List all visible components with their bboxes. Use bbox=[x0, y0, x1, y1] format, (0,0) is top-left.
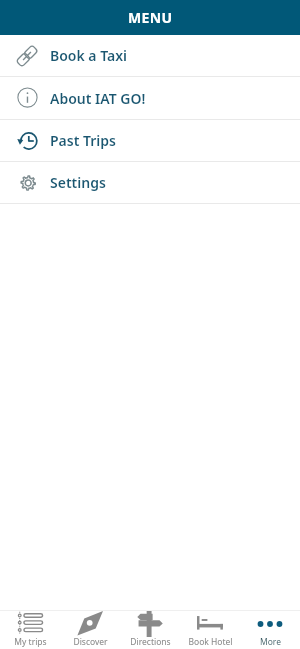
staticText: Past Trips bbox=[50, 131, 116, 150]
button[interactable]: Directions bbox=[120, 611, 180, 649]
staticText: Discover bbox=[73, 636, 108, 648]
staticText: More bbox=[260, 636, 281, 648]
button[interactable]: About IAT GO! bbox=[0, 77, 300, 120]
staticText: Book Hotel bbox=[188, 636, 233, 648]
staticText: My trips bbox=[14, 636, 47, 648]
button[interactable]: More bbox=[240, 611, 300, 649]
staticText: Book a Taxi bbox=[50, 46, 128, 65]
staticText: Settings bbox=[50, 173, 106, 192]
button[interactable]: Past Trips bbox=[0, 120, 300, 162]
staticText: MENU bbox=[128, 8, 173, 27]
button[interactable]: Settings bbox=[0, 162, 300, 204]
button[interactable]: Book a Taxi bbox=[0, 35, 300, 77]
button[interactable]: Discover bbox=[60, 611, 120, 649]
staticText: Directions bbox=[130, 636, 171, 648]
button[interactable]: Book Hotel bbox=[180, 611, 240, 649]
staticText: About IAT GO! bbox=[50, 89, 146, 108]
button[interactable]: My trips bbox=[0, 611, 60, 649]
